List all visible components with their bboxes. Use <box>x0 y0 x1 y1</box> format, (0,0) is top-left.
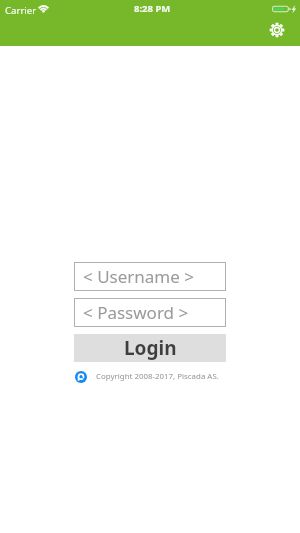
button[interactable]: < Username > <box>74 262 226 291</box>
staticText: Carrier <box>5 4 37 17</box>
button[interactable]: Login <box>74 334 226 362</box>
staticText: < Password > <box>83 301 189 324</box>
staticText: < Username > <box>83 265 194 288</box>
staticText: Login <box>124 335 177 361</box>
staticText: Copyright 2008-2017, Piscada AS. <box>96 371 219 382</box>
button[interactable]: Settings <box>265 18 289 42</box>
staticText: 8:28 PM <box>134 2 171 15</box>
button[interactable]: < Password > <box>74 298 226 327</box>
